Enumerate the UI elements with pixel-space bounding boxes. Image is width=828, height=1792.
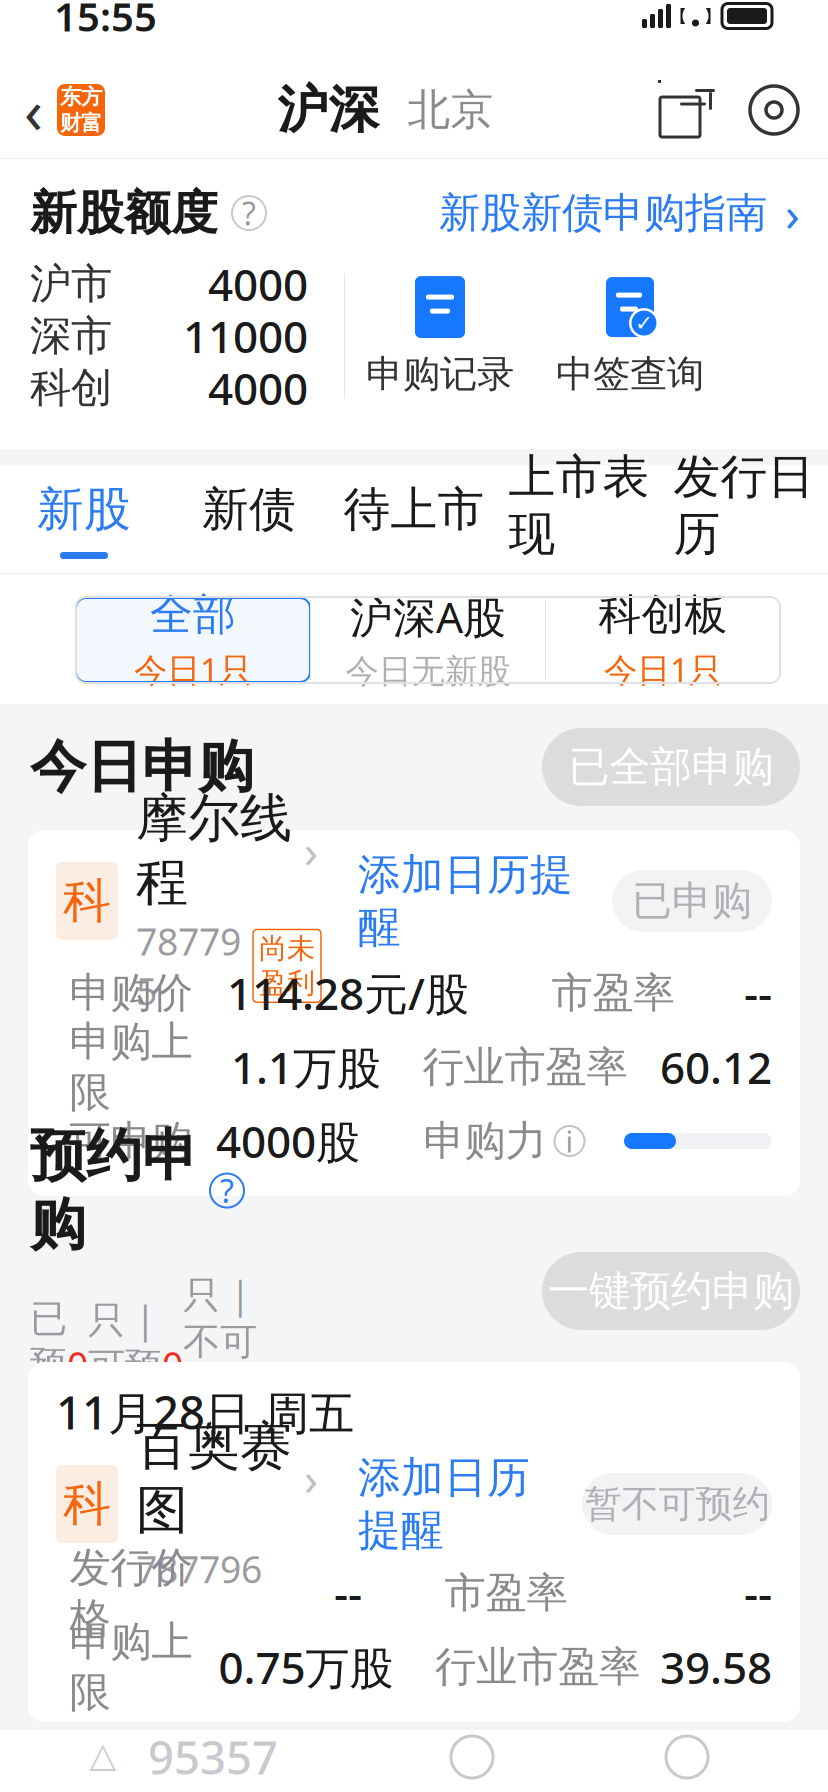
staticText: -- <box>334 1564 362 1622</box>
button[interactable]: 添加日历提醒 <box>348 1452 540 1556</box>
staticText: 全部 <box>150 589 236 641</box>
staticText: 行业市盈率 <box>435 1642 640 1692</box>
button[interactable]: 添加日历提醒 <box>348 849 583 953</box>
staticText: 发行价格 <box>69 1542 192 1644</box>
staticText: 摩尔线程 <box>136 787 292 914</box>
staticText: 发行日历 <box>673 448 814 563</box>
staticText: 11000 <box>183 307 308 365</box>
staticText: 39.58 <box>660 1638 772 1696</box>
staticText: 尚未盈利 <box>259 931 315 1000</box>
staticText: 15:55 <box>54 0 157 42</box>
button[interactable]: 百奥赛图 <box>118 1456 348 1552</box>
staticText: 4000股 <box>216 1112 360 1170</box>
staticText: 已申购 <box>632 876 752 925</box>
button[interactable]: 沪深A股 <box>311 598 545 682</box>
staticText: 新股额度 <box>30 184 218 242</box>
staticText: 科创 <box>30 363 112 413</box>
staticText: 只 | 可预约 <box>88 1294 162 1435</box>
button[interactable]: 额度说明 <box>218 196 266 230</box>
staticText: 科创板 <box>598 589 727 641</box>
button[interactable]: 设置 <box>714 79 828 141</box>
button[interactable]: ✓ <box>535 261 725 411</box>
staticText: 1.1万股 <box>231 1038 381 1096</box>
staticText: 787796 <box>136 1544 262 1594</box>
button[interactable]: 全部 <box>76 598 310 682</box>
button[interactable]: 待上市 <box>331 465 496 573</box>
staticText: 中签查询 <box>556 351 704 397</box>
button[interactable]: 分享 <box>658 80 714 140</box>
staticText: › <box>304 1448 318 1508</box>
button[interactable]: 已申购 <box>612 870 772 932</box>
staticText: 申购力 <box>423 1116 546 1166</box>
button[interactable]: 新股新债申购指南 <box>439 181 800 245</box>
staticText: 深市 <box>30 311 112 361</box>
staticText: △ <box>89 1735 116 1775</box>
button[interactable]: 北京 <box>385 84 499 136</box>
button[interactable]: 交易 <box>666 1736 708 1778</box>
staticText: 787795 <box>136 916 241 1015</box>
staticText: 0 <box>67 1340 88 1390</box>
staticText: 申购记录 <box>366 351 514 397</box>
staticText: 今日无新股 <box>345 651 510 692</box>
button[interactable]: 摩尔线程 <box>118 853 348 949</box>
staticText: 市盈率 <box>551 968 674 1018</box>
staticText: 新股新债申购指南 <box>439 188 767 238</box>
button[interactable]: 新股 <box>1 465 166 573</box>
staticText: › <box>785 181 800 245</box>
button[interactable]: 行情 <box>451 1736 493 1778</box>
staticText: ? <box>242 192 256 234</box>
staticText: 只 | 不可预约1只 <box>183 1269 278 1460</box>
staticText: 新股 <box>37 481 131 538</box>
staticText: 百奥赛图 <box>136 1414 292 1542</box>
button[interactable]: 暂不可预约 <box>582 1473 772 1535</box>
staticText: 市盈率 <box>444 1568 567 1618</box>
staticText: -- <box>744 964 772 1022</box>
staticText: 沪市 <box>30 259 112 309</box>
staticText: 0 <box>162 1340 183 1390</box>
staticText: 添加日历提醒 <box>358 1452 530 1556</box>
staticText: 科 <box>63 1474 111 1533</box>
staticText: 申购上限 <box>69 1616 192 1718</box>
staticText: 已预约 <box>30 1296 67 1434</box>
button[interactable]: 新债 <box>166 465 331 573</box>
staticText: 暂不可预约 <box>584 1481 769 1527</box>
button[interactable]: 上市表现 <box>496 465 661 573</box>
staticText: 上市表现 <box>508 448 649 563</box>
staticText: 添加日历提醒 <box>358 849 573 953</box>
staticText: 4000 <box>208 359 308 417</box>
staticText: 行业市盈率 <box>422 1042 627 1092</box>
staticText: 科 <box>63 871 111 930</box>
staticText: 已全部申购 <box>568 742 773 792</box>
button[interactable]: 自选 <box>58 1730 148 1784</box>
button[interactable]: 申购记录 <box>345 261 535 411</box>
staticText: 0.75万股 <box>218 1638 393 1696</box>
button[interactable]: 返回 <box>0 62 113 158</box>
button[interactable]: 沪深 <box>271 79 385 141</box>
staticText: 预约申购 <box>30 1122 198 1259</box>
button[interactable]: 一键预约申购 <box>542 1252 800 1330</box>
staticText: › <box>304 820 318 880</box>
button[interactable]: 科创板 <box>546 598 780 682</box>
staticText: 沪深 <box>277 79 379 141</box>
staticText: 今日申购 <box>30 733 254 801</box>
staticText: 北京 <box>407 84 493 136</box>
staticText: 11月28日 周五 <box>56 1382 354 1442</box>
staticText: 4000 <box>208 255 308 313</box>
staticText: 东方 财富 <box>60 84 102 136</box>
staticText: 今日1只 <box>134 647 252 691</box>
staticText: 申购上限 <box>69 1016 192 1118</box>
staticText: 今日1只 <box>604 647 722 691</box>
staticText: 申购价 <box>69 968 192 1018</box>
staticText: ? <box>220 1169 234 1212</box>
button[interactable]: 预约说明 <box>210 1174 244 1208</box>
staticText: 114.28元/股 <box>227 964 469 1022</box>
staticText: i <box>565 1121 573 1160</box>
staticText: 95357 <box>148 1727 278 1787</box>
staticText: 沪深A股 <box>350 588 506 645</box>
staticText: 一键预约申购 <box>548 1266 794 1316</box>
button[interactable]: 已全部申购 <box>542 728 800 806</box>
button[interactable]: 发行日历 <box>661 465 826 573</box>
staticText: ✓ <box>635 311 653 335</box>
staticText: 可申购 <box>69 1116 192 1166</box>
staticText: ‹ <box>24 69 43 151</box>
